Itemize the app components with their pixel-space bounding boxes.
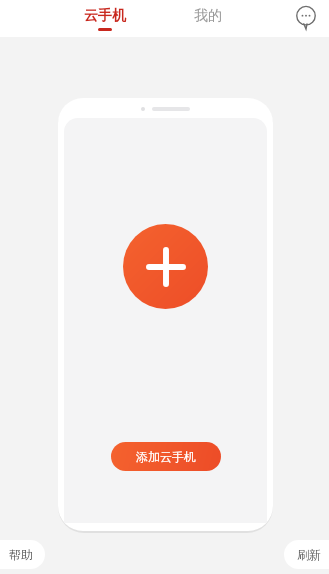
- button[interactable]: Feedback: [291, 2, 321, 32]
- staticText: 云手机: [84, 7, 126, 25]
- staticText: 帮助: [9, 547, 33, 562]
- staticText: 添加云手机: [136, 449, 196, 464]
- button[interactable]: 帮助: [0, 540, 45, 569]
- staticText: 我的: [194, 7, 222, 25]
- button[interactable]: 刷新: [284, 540, 329, 569]
- button[interactable]: 我的: [188, 4, 228, 28]
- button[interactable]: 云手机: [78, 5, 132, 33]
- button[interactable]: Add cloud phone: [123, 224, 208, 309]
- button[interactable]: 添加云手机: [111, 442, 221, 471]
- staticText: 刷新: [297, 547, 321, 562]
